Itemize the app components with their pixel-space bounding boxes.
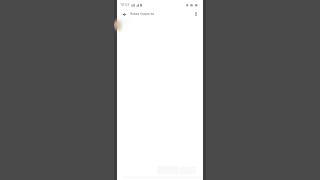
- button[interactable]: Note body: [117, 19, 203, 164]
- staticText: Новая подписка: [130, 12, 155, 16]
- button[interactable]: Back: [120, 10, 128, 18]
- button[interactable]: More options: [192, 10, 200, 18]
- staticText: 10:53: [120, 2, 130, 7]
